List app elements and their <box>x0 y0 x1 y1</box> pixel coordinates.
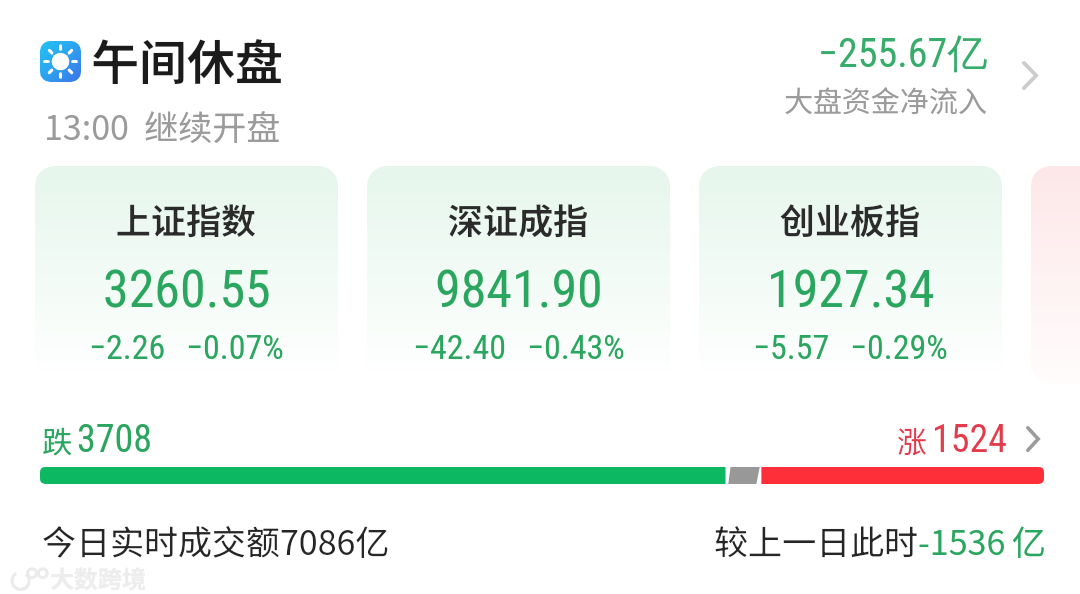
other: Advance decline ratio <box>40 467 1044 484</box>
button[interactable]: 创业板指 <box>699 166 1002 384</box>
staticText: 午间休盘 <box>91 24 284 94</box>
staticText: -1536 亿 <box>918 516 1047 565</box>
staticText: 3708 <box>77 417 153 462</box>
staticText: 上证指数 <box>116 193 257 244</box>
staticText: −0.07% <box>186 327 284 367</box>
staticText: 涨 <box>897 418 927 461</box>
staticText: −0.29% <box>850 327 948 367</box>
staticText: 13:00 继续开盘 <box>44 101 281 150</box>
staticText: −0.43% <box>527 327 625 367</box>
button[interactable]: 涨 <box>897 417 1040 462</box>
staticText: 较上一日此时 <box>714 516 918 565</box>
other: More <box>1026 426 1040 452</box>
staticText: −255.67亿 <box>818 28 988 78</box>
staticText: 今日实时成交额7086亿 <box>42 516 390 565</box>
staticText: −42.40 <box>413 327 507 367</box>
button[interactable]: −255.67亿 <box>700 28 1046 120</box>
other: More <box>1022 61 1038 90</box>
staticText: 大数跨境 <box>50 560 146 594</box>
staticText: 9841.90 <box>435 259 603 320</box>
staticText: 1524 <box>932 417 1008 462</box>
staticText: 创业板指 <box>780 193 921 244</box>
staticText: −5.57 <box>753 327 830 367</box>
staticText: 大盘资金净流入 <box>784 78 988 120</box>
staticText: 跌 <box>42 418 72 461</box>
button[interactable] <box>1031 166 1080 384</box>
staticText: 深证成指 <box>448 193 589 244</box>
staticText: −2.26 <box>89 327 166 367</box>
staticText: 1927.34 <box>767 259 935 320</box>
button[interactable]: 深证成指 <box>367 166 670 384</box>
other: Weather <box>40 41 81 82</box>
button[interactable]: 上证指数 <box>35 166 338 384</box>
staticText: 3260.55 <box>103 259 271 320</box>
